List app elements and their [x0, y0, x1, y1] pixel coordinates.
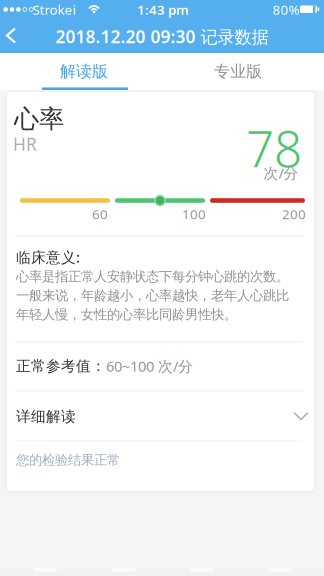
staticText: 临床意义:	[16, 247, 80, 267]
staticText: 78	[246, 115, 302, 181]
staticText: Strokei	[32, 1, 75, 18]
staticText: 60	[92, 205, 108, 223]
staticText: 一般来说，年龄越小，心率越快，老年人心跳比	[16, 287, 289, 304]
button[interactable]: 专业版	[157, 53, 319, 90]
button[interactable]: 解读版	[3, 53, 165, 90]
staticText: 2018.12.20 09:30 记录数据	[55, 25, 268, 48]
staticText: 80%	[272, 1, 299, 18]
staticText: 年轻人慢，女性的心率比同龄男性快。	[16, 306, 237, 323]
staticText: 您的检验结果正常	[16, 452, 120, 468]
staticText: 专业版	[214, 62, 262, 81]
button[interactable]: Back	[3, 26, 23, 46]
staticText: 解读版	[60, 62, 108, 81]
staticText: 100	[182, 205, 206, 223]
staticText: 次/分	[263, 163, 298, 183]
staticText: HR	[13, 132, 37, 155]
button[interactable]: 详细解读	[16, 401, 308, 431]
staticText: 1:43 pm	[137, 1, 189, 18]
staticText: 心率是指正常人安静状态下每分钟心跳的次数。	[16, 268, 289, 285]
staticText: 心率	[14, 103, 64, 134]
staticText: 正常参考值：	[16, 357, 106, 375]
staticText: 详细解读	[16, 407, 76, 425]
staticText: 200	[282, 205, 306, 223]
staticText: 60~100 次/分	[106, 356, 193, 376]
